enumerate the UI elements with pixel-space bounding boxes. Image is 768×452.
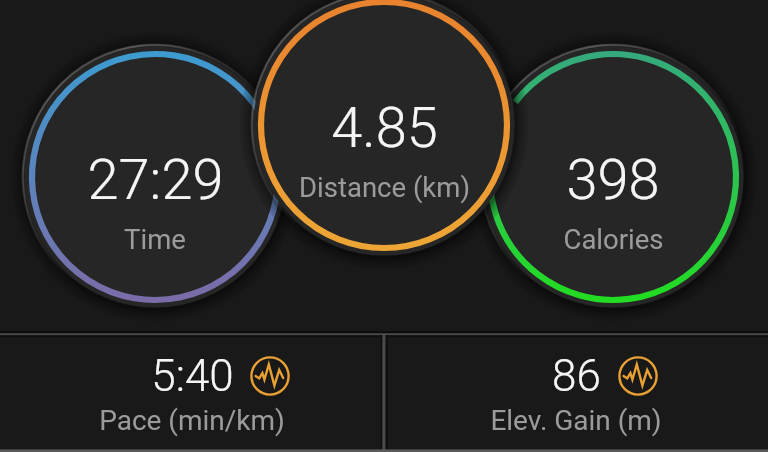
staticText: 5:40: [151, 350, 234, 402]
staticText: Time: [124, 223, 186, 255]
staticText: Elev. Gain (m): [490, 404, 662, 437]
button[interactable]: 4.85: [239, 0, 529, 270]
button[interactable]: 86: [384, 331, 768, 452]
button[interactable]: 27:29: [10, 32, 300, 322]
staticText: Calories: [563, 223, 664, 255]
button[interactable]: 398: [468, 32, 758, 322]
button[interactable]: 5:40: [0, 331, 384, 452]
staticText: 4.85: [331, 95, 438, 161]
staticText: Distance (km): [299, 171, 470, 203]
other: Activity: [618, 356, 658, 396]
other: Activity: [250, 356, 290, 396]
staticText: 86: [552, 350, 601, 402]
staticText: Pace (min/km): [99, 404, 285, 437]
staticText: 27:29: [87, 147, 224, 213]
staticText: 398: [566, 147, 660, 213]
